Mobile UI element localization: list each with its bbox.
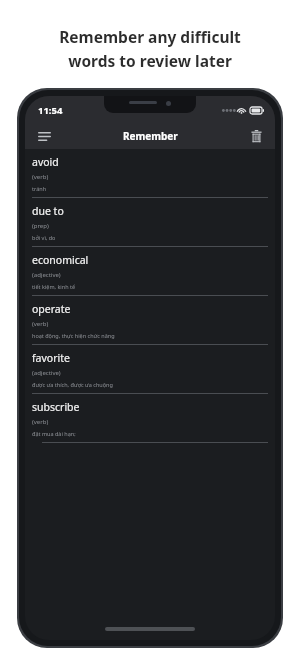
staticText: due to bbox=[32, 204, 64, 218]
staticText: được ưa thích, được ưa chuộng bbox=[32, 381, 113, 388]
button[interactable]: Menu bbox=[31, 123, 57, 149]
staticText: Remember bbox=[123, 129, 178, 143]
staticText: (adjective) bbox=[32, 369, 61, 377]
staticText: (verb) bbox=[32, 418, 49, 426]
button[interactable]: operate bbox=[25, 296, 275, 345]
staticText: economical bbox=[32, 253, 89, 267]
staticText: words to review later bbox=[68, 50, 232, 71]
staticText: avoid bbox=[32, 155, 59, 169]
button[interactable]: Delete bbox=[243, 123, 269, 149]
button[interactable]: economical bbox=[25, 247, 275, 296]
staticText: hoạt động, thực hiện chức năng bbox=[32, 332, 115, 339]
button[interactable]: due to bbox=[25, 198, 275, 247]
button[interactable]: avoid bbox=[25, 149, 275, 198]
staticText: favorite bbox=[32, 351, 70, 365]
staticText: Remember any difficult bbox=[59, 26, 241, 47]
staticText: tránh bbox=[32, 185, 47, 192]
staticText: 11:54 bbox=[38, 104, 63, 117]
staticText: (verb) bbox=[32, 173, 49, 181]
staticText: subscribe bbox=[32, 400, 80, 414]
staticText: tiết kiệm, kinh tế bbox=[32, 283, 76, 290]
staticText: (adjective) bbox=[32, 271, 61, 279]
staticText: (prep) bbox=[32, 222, 49, 230]
staticText: (verb) bbox=[32, 320, 49, 328]
button[interactable]: favorite bbox=[25, 345, 275, 394]
staticText: bởi vì, do bbox=[32, 234, 56, 241]
staticText: operate bbox=[32, 302, 71, 316]
button[interactable]: subscribe bbox=[25, 394, 275, 443]
staticText: đặt mua dài hạn; bbox=[32, 430, 76, 437]
